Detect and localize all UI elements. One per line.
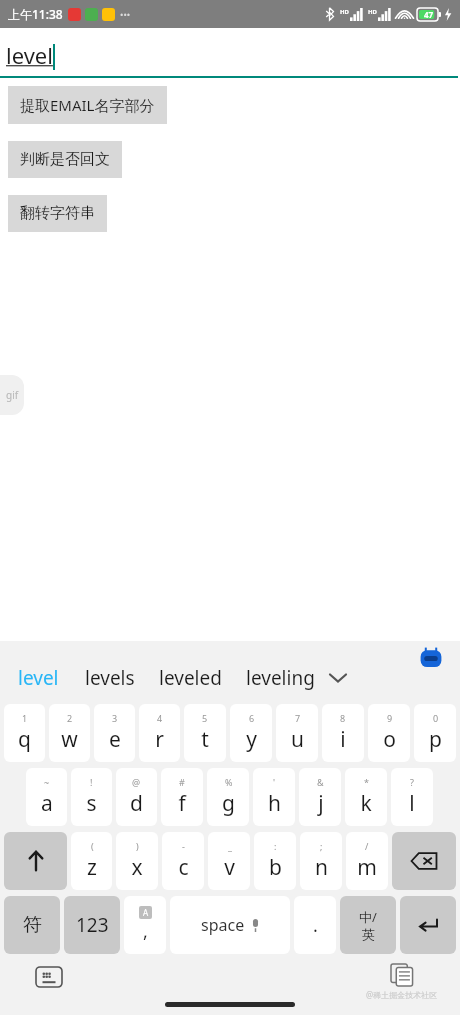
button[interactable]: level (16, 661, 61, 695)
button[interactable]: 4 (139, 704, 180, 762)
button[interactable]: 6 (230, 704, 272, 762)
staticText: ; (320, 840, 323, 852)
staticText: ) (136, 840, 139, 852)
staticText: @ (132, 776, 141, 788)
button[interactable]: leveling (244, 661, 317, 695)
staticText: _ (228, 840, 232, 852)
staticText: levels (85, 665, 135, 691)
staticText: b (269, 853, 282, 882)
button[interactable]: ! (71, 768, 112, 826)
staticText: 1 (22, 712, 28, 724)
button[interactable]: 2 (49, 704, 90, 762)
staticText: q (18, 725, 31, 754)
staticText: space (201, 914, 245, 936)
button[interactable]: ~ (26, 768, 67, 826)
staticText: - (182, 840, 185, 852)
button[interactable]: levels (83, 661, 137, 695)
staticText: 中/ (359, 908, 377, 926)
button[interactable]: & (299, 768, 341, 826)
staticText: w (61, 725, 78, 754)
staticText: 提取EMAIL名字部分 (20, 95, 155, 115)
button[interactable]: space (170, 896, 290, 954)
button[interactable]: . (294, 896, 336, 954)
staticText: l (409, 789, 415, 818)
button[interactable]: 7 (276, 704, 318, 762)
button[interactable]: : (254, 832, 296, 890)
staticText: h (268, 789, 281, 818)
staticText: leveled (159, 665, 222, 691)
button[interactable]: 中/ (340, 896, 396, 954)
staticText: 英 (362, 926, 375, 942)
button[interactable]: ) (116, 832, 158, 890)
staticText: e (109, 725, 121, 754)
staticText: m (357, 853, 377, 882)
button[interactable]: 9 (368, 704, 410, 762)
staticText: @稀土掘金技术社区 (366, 989, 438, 1000)
button[interactable]: ( (71, 832, 112, 890)
staticText: ••• (120, 8, 131, 20)
staticText: 翻转字符串 (20, 204, 95, 223)
button[interactable]: 0 (414, 704, 456, 762)
button[interactable]: / (346, 832, 388, 890)
staticText: 47 (424, 9, 434, 20)
button[interactable]: 123 (64, 896, 120, 954)
staticText: s (86, 789, 97, 818)
button[interactable]: Assistant (416, 643, 446, 673)
button[interactable]: leveled (157, 661, 224, 695)
staticText: y (246, 725, 257, 754)
button[interactable]: 提取EMAIL名字部分 (8, 86, 167, 124)
button[interactable]: 8 (322, 704, 364, 762)
button[interactable]: 5 (184, 704, 226, 762)
button[interactable]: 符 (4, 896, 60, 954)
button[interactable]: Shift (4, 832, 67, 890)
button[interactable]: More suggestions (325, 665, 351, 691)
button[interactable]: ; (300, 832, 342, 890)
button[interactable]: Enter (400, 896, 456, 954)
button[interactable]: ? (391, 768, 433, 826)
staticText: t (201, 725, 209, 754)
staticText: & (317, 776, 324, 788)
staticText: j (318, 789, 324, 818)
staticText: z (87, 853, 97, 882)
staticText: ? (410, 776, 414, 788)
button[interactable]: % (207, 768, 249, 826)
staticText: n (315, 853, 328, 882)
button[interactable]: _ (208, 832, 250, 890)
button[interactable]: * (345, 768, 387, 826)
staticText: HD (340, 8, 349, 16)
staticText: % (225, 776, 233, 788)
staticText: a (41, 789, 53, 818)
staticText: HD (368, 8, 377, 16)
staticText: r (155, 725, 164, 754)
staticText: ( (91, 840, 94, 852)
staticText: # (179, 776, 185, 788)
staticText: u (291, 725, 304, 754)
button[interactable]: A (124, 896, 166, 954)
staticText: v (224, 853, 235, 882)
staticText: o (383, 725, 396, 754)
button[interactable]: # (161, 768, 203, 826)
staticText: 6 (249, 712, 255, 724)
staticText: ' (273, 776, 276, 788)
button[interactable]: GIF (0, 375, 24, 415)
staticText: ~ (44, 776, 50, 788)
staticText: 上午11:38 (8, 6, 63, 22)
button[interactable]: 判断是否回文 (8, 141, 122, 178)
staticText: 0 (433, 712, 439, 724)
button[interactable]: @ (116, 768, 157, 826)
button[interactable]: - (162, 832, 204, 890)
staticText: c (178, 853, 189, 882)
button[interactable]: Backspace (392, 832, 456, 890)
button[interactable]: ' (253, 768, 295, 826)
button[interactable]: 翻转字符串 (8, 195, 107, 232)
button[interactable]: Switch keyboard (34, 965, 64, 989)
button[interactable]: Clipboard (388, 961, 416, 989)
staticText: : (274, 840, 277, 852)
staticText: d (130, 789, 143, 818)
button[interactable]: 3 (94, 704, 135, 762)
staticText: 7 (295, 712, 301, 724)
staticText: 3 (112, 712, 118, 724)
staticText: . (313, 913, 318, 938)
button[interactable]: 1 (4, 704, 45, 762)
staticText: 判断是否回文 (20, 150, 110, 169)
